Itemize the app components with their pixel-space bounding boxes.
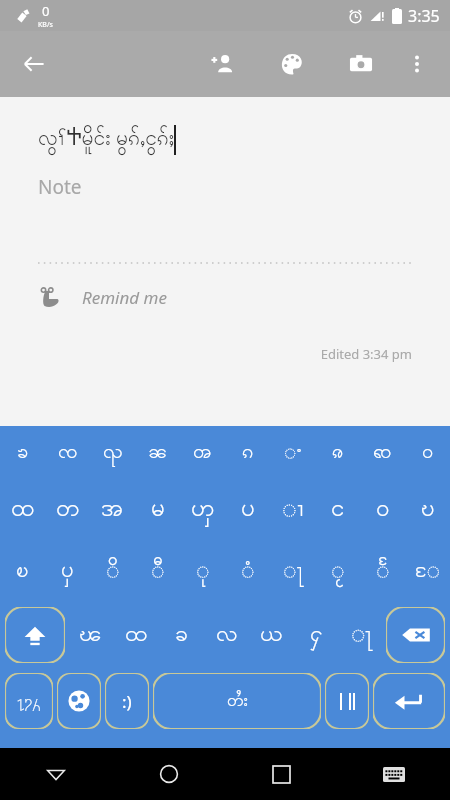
- button[interactable]: ႂ: [315, 540, 360, 602]
- button[interactable]: င: [315, 478, 360, 540]
- staticText: ႂ: [331, 555, 345, 587]
- staticText: မ: [151, 492, 165, 527]
- button[interactable]: Change language: [57, 673, 101, 729]
- button[interactable]: ၽ: [67, 605, 113, 665]
- button[interactable]: Punctuation: [325, 673, 369, 729]
- staticText: ိ: [106, 555, 120, 587]
- staticText: ခ: [175, 618, 188, 652]
- staticText: ႃ: [351, 618, 372, 652]
- staticText: တ: [56, 492, 80, 527]
- button[interactable]: Add collaborator: [198, 40, 246, 88]
- staticText: လ: [216, 618, 238, 652]
- button[interactable]: ၦ: [45, 540, 90, 602]
- staticText: ီ: [151, 555, 165, 587]
- button[interactable]: ၸ: [45, 426, 90, 478]
- button[interactable]: Shift: [5, 607, 65, 663]
- staticText: ဎ: [421, 492, 435, 527]
- button[interactable]: ခ: [159, 605, 204, 665]
- staticText: KB/s: [38, 20, 53, 30]
- button[interactable]: အ: [90, 478, 135, 540]
- staticText: ၸ: [58, 438, 78, 467]
- button[interactable]: Space: [153, 673, 321, 729]
- button[interactable]: More options: [395, 42, 439, 86]
- staticText: ၯ: [191, 492, 215, 527]
- button[interactable]: မ: [135, 478, 180, 540]
- staticText: ၻ: [193, 438, 212, 467]
- button[interactable]: Emoji: [105, 673, 149, 729]
- button[interactable]: Backspace: [386, 607, 445, 663]
- staticText: Edited 3:34 pm: [0, 345, 412, 363]
- button[interactable]: ၶ: [0, 426, 45, 478]
- staticText: ႁ: [310, 618, 323, 652]
- button[interactable]: ႄ: [405, 540, 450, 602]
- staticText: Remind me: [82, 286, 167, 309]
- button[interactable]: ႃ: [339, 605, 384, 665]
- button[interactable]: ၿ: [0, 540, 45, 602]
- staticText: ု: [196, 555, 210, 587]
- button[interactable]: တ: [45, 478, 90, 540]
- button[interactable]: ၯ: [180, 478, 225, 540]
- button[interactable]: Back: [10, 40, 58, 88]
- staticText: ၦ: [61, 555, 74, 587]
- button[interactable]: Note: [0, 174, 450, 200]
- staticText: :): [122, 690, 132, 713]
- staticText: ထ: [11, 492, 35, 527]
- staticText: ၹ: [373, 438, 392, 467]
- button[interactable]: ယ: [249, 605, 294, 665]
- button[interactable]: ဝ: [405, 426, 450, 478]
- button[interactable]: ႁ: [294, 605, 339, 665]
- button[interactable]: လွၢ်Ⴕမိူင်း မွၵ်ႇငွၵ်ႈ: [0, 123, 450, 156]
- staticText: ၷ: [332, 438, 344, 467]
- staticText: ၽ: [79, 618, 102, 652]
- staticText: ၶ: [17, 438, 29, 467]
- button[interactable]: Remind me: [0, 286, 450, 309]
- button[interactable]: ထ: [113, 605, 159, 665]
- button[interactable]: Numbers: [5, 673, 53, 729]
- button[interactable]: ထ: [0, 478, 45, 540]
- button[interactable]: ႃ: [270, 540, 315, 602]
- button[interactable]: Enter: [373, 673, 445, 729]
- button[interactable]: Change color: [268, 40, 316, 88]
- staticText: ၺ: [103, 438, 123, 467]
- button[interactable]: Home: [145, 750, 193, 798]
- staticText: ၢ: [282, 492, 304, 527]
- staticText: ယ: [260, 618, 283, 652]
- button[interactable]: ဎ: [405, 478, 450, 540]
- staticText: ၿ: [16, 555, 29, 587]
- staticText: ႑႒႓: [17, 692, 41, 711]
- button[interactable]: ၻ: [180, 426, 225, 478]
- button[interactable]: ံ: [225, 540, 270, 602]
- staticText: ံ: [241, 555, 255, 587]
- staticText: အ: [101, 492, 124, 527]
- button[interactable]: Hide keyboard: [32, 750, 80, 798]
- button[interactable]: ု: [180, 540, 225, 602]
- button[interactable]: Switch keyboard: [370, 750, 418, 798]
- staticText: Note: [38, 174, 82, 200]
- staticText: ဝ: [422, 438, 434, 467]
- staticText: 0: [42, 2, 50, 20]
- staticText: လွၢ်Ⴕမိူင်း မွၵ်ႇငွၵ်ႈ: [38, 123, 174, 156]
- staticText: ၵ: [242, 438, 254, 467]
- staticText: ႃ: [283, 555, 303, 587]
- staticText: တႆး: [227, 689, 248, 714]
- button[interactable]: ၺ: [90, 426, 135, 478]
- button[interactable]: လ: [204, 605, 249, 665]
- staticText: ဝ: [376, 492, 390, 527]
- button[interactable]: ႚ: [270, 426, 315, 478]
- staticText: ပ: [241, 492, 255, 527]
- button[interactable]: ဝ: [360, 478, 405, 540]
- button[interactable]: Recents: [257, 750, 305, 798]
- staticText: ၼ: [148, 438, 168, 467]
- button[interactable]: ၷ: [315, 426, 360, 478]
- button[interactable]: ိ: [90, 540, 135, 602]
- button[interactable]: ၢ: [270, 478, 315, 540]
- button[interactable]: ႅ: [360, 540, 405, 602]
- button[interactable]: Camera: [337, 40, 385, 88]
- button[interactable]: ၵ: [225, 426, 270, 478]
- button[interactable]: ၹ: [360, 426, 405, 478]
- button[interactable]: ၼ: [135, 426, 180, 478]
- button[interactable]: ီ: [135, 540, 180, 602]
- button[interactable]: ပ: [225, 478, 270, 540]
- staticText: ႄ: [415, 555, 441, 587]
- staticText: င: [331, 492, 345, 527]
